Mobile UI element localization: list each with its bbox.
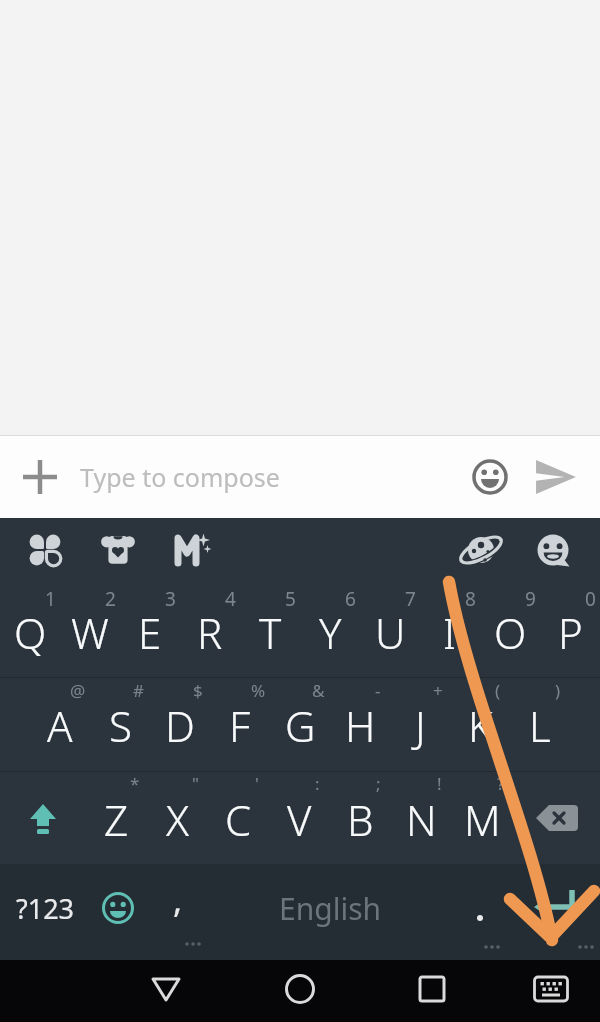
button[interactable]: & <box>270 678 330 771</box>
staticText: H <box>345 697 376 754</box>
button[interactable] <box>260 960 340 1022</box>
staticText: O <box>494 604 527 661</box>
button[interactable]: , <box>146 864 210 960</box>
button[interactable]: 3 <box>120 573 180 677</box>
button[interactable]: * <box>86 772 147 864</box>
button[interactable]: % <box>210 678 270 771</box>
button[interactable]: 1 <box>0 573 60 677</box>
button[interactable]: ? <box>452 772 513 864</box>
button[interactable]: ( <box>450 678 510 771</box>
staticText: # <box>133 679 144 702</box>
staticText: V <box>287 791 312 848</box>
staticText: G <box>285 697 316 754</box>
button[interactable]: : <box>269 772 330 864</box>
staticText: $ <box>193 679 203 702</box>
staticText: Z <box>104 791 129 848</box>
button[interactable] <box>158 518 222 573</box>
button[interactable] <box>13 518 77 573</box>
staticText: ! <box>437 772 442 795</box>
staticText: % <box>251 679 266 702</box>
staticText: Y <box>319 604 342 661</box>
button[interactable] <box>126 960 206 1022</box>
staticText: 9 <box>525 586 536 612</box>
button[interactable]: ! <box>391 772 452 864</box>
staticText: W <box>71 604 109 661</box>
staticText: K <box>468 697 493 754</box>
button[interactable]: 6 <box>300 573 360 677</box>
staticText: I <box>443 604 457 661</box>
staticText: R <box>197 604 223 661</box>
staticText: ?123 <box>16 890 75 927</box>
staticText: 7 <box>405 586 416 612</box>
staticText: U <box>375 604 406 661</box>
staticText: ) <box>555 679 561 702</box>
button[interactable]: + <box>390 678 450 771</box>
staticText: N <box>406 791 437 848</box>
staticText: + <box>433 679 443 702</box>
staticText: ( <box>495 679 501 702</box>
button[interactable]: 4 <box>180 573 240 677</box>
button[interactable] <box>511 960 591 1022</box>
button[interactable] <box>0 772 86 864</box>
staticText: 8 <box>465 586 476 612</box>
button[interactable] <box>513 772 600 864</box>
staticText: S <box>109 697 132 754</box>
button[interactable]: - <box>330 678 390 771</box>
button[interactable] <box>90 864 146 960</box>
staticText: C <box>225 791 252 848</box>
staticText: & <box>312 679 325 702</box>
staticText: ? <box>497 772 505 795</box>
staticText: , <box>173 877 183 923</box>
button[interactable]: @ <box>30 678 90 771</box>
button[interactable] <box>450 864 510 960</box>
button[interactable]: ' <box>208 772 269 864</box>
button[interactable]: 2 <box>60 573 120 677</box>
button[interactable] <box>0 436 80 518</box>
button[interactable] <box>86 518 150 573</box>
button[interactable]: 9 <box>480 573 540 677</box>
staticText: : <box>315 772 320 795</box>
staticText: Type to compose <box>80 460 280 494</box>
staticText: 0 <box>585 586 596 612</box>
button[interactable]: ; <box>330 772 391 864</box>
button[interactable]: ) <box>510 678 570 771</box>
staticText: F <box>229 697 251 754</box>
staticText: ; <box>376 772 381 795</box>
staticText: ' <box>255 772 259 795</box>
button[interactable] <box>458 436 522 518</box>
staticText: 6 <box>345 586 356 612</box>
staticText: X <box>166 791 189 848</box>
button[interactable]: $ <box>150 678 210 771</box>
button[interactable] <box>522 436 590 518</box>
staticText: D <box>165 697 195 754</box>
button[interactable] <box>510 864 600 960</box>
staticText: English <box>279 888 382 929</box>
button[interactable] <box>392 960 472 1022</box>
staticText: P <box>558 604 583 661</box>
staticText: B <box>347 791 374 848</box>
button[interactable]: " <box>147 772 208 864</box>
button[interactable]: # <box>90 678 150 771</box>
staticText: T <box>259 604 282 661</box>
button[interactable]: English <box>210 864 450 960</box>
staticText: 5 <box>285 586 296 612</box>
button[interactable]: 8 <box>420 573 480 677</box>
staticText: 3 <box>165 586 176 612</box>
staticText: A <box>47 697 73 754</box>
button[interactable]: 5 <box>240 573 300 677</box>
staticText: 2 <box>105 586 116 612</box>
staticText: J <box>415 697 426 754</box>
button[interactable]: 0 <box>540 573 600 677</box>
staticText: * <box>130 772 140 795</box>
button[interactable]: 7 <box>360 573 420 677</box>
button[interactable] <box>449 518 513 573</box>
staticText: E <box>138 604 162 661</box>
button[interactable]: ?123 <box>0 864 90 960</box>
staticText: 4 <box>225 586 236 612</box>
staticText: Q <box>14 604 47 661</box>
staticText: M <box>464 791 501 848</box>
staticText: 1 <box>45 586 56 612</box>
button[interactable]: Type to compose <box>80 436 458 518</box>
button[interactable] <box>521 518 585 573</box>
staticText: " <box>192 772 199 795</box>
